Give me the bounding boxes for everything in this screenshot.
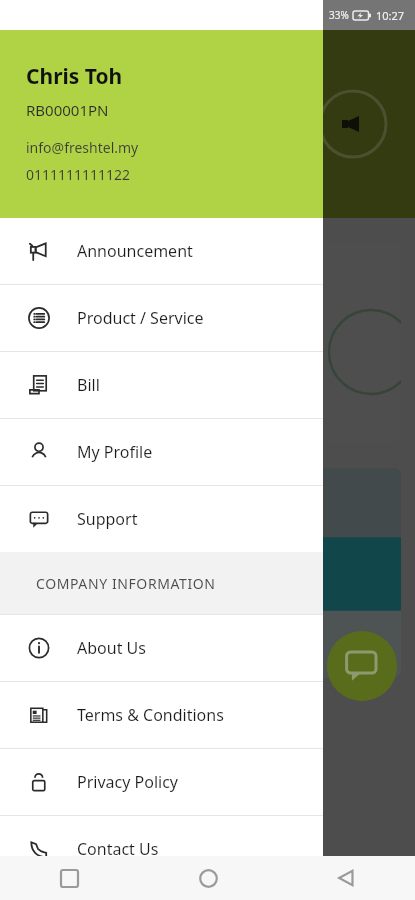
staticText: 10:27 <box>376 8 405 23</box>
staticText: Terms & Conditions <box>77 704 224 726</box>
staticText: Privacy Policy <box>77 771 178 793</box>
button[interactable]: Privacy Policy <box>0 749 323 815</box>
button[interactable]: About Us <box>0 615 323 681</box>
button[interactable]: Product / Service <box>0 285 323 351</box>
staticText: Product / Service <box>77 307 204 329</box>
staticText: About Us <box>77 637 146 659</box>
staticText: Support <box>77 508 138 530</box>
button[interactable]: My Profile <box>0 419 323 485</box>
staticText: 0111111111122 <box>26 165 131 184</box>
staticText: 33% <box>329 8 349 22</box>
button[interactable]: Terms & Conditions <box>0 682 323 748</box>
button[interactable]: Support <box>0 486 323 552</box>
button[interactable]: Bill <box>0 352 323 418</box>
staticText: My Profile <box>77 441 153 463</box>
staticText: info@freshtel.my <box>26 138 139 157</box>
staticText: COMPANY INFORMATION <box>36 574 216 593</box>
button[interactable]: Recent apps <box>0 856 139 900</box>
button[interactable]: Contact Us <box>0 816 323 882</box>
button[interactable]: Announcement <box>0 218 323 284</box>
staticText: Chris Toh <box>26 62 123 91</box>
button[interactable]: Chat <box>327 631 397 701</box>
button[interactable]: Back <box>277 856 415 900</box>
staticText: Contact Us <box>77 838 159 860</box>
button[interactable]: Home <box>139 856 277 900</box>
staticText: Bill <box>77 374 100 396</box>
staticText: Announcement <box>77 240 193 262</box>
staticText: RB00001PN <box>26 100 109 120</box>
